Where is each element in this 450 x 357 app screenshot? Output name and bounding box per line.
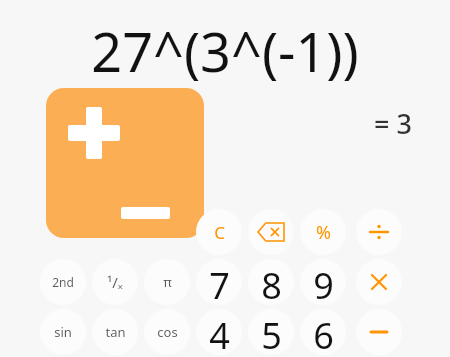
button[interactable]: 2nd [40, 259, 86, 305]
staticText: C [214, 221, 225, 244]
staticText: sin [54, 323, 72, 341]
staticText: 5 [261, 311, 282, 355]
staticText: tan [105, 323, 126, 341]
button[interactable]: π [144, 259, 190, 305]
button[interactable]: Plus and minus [46, 88, 204, 238]
staticText: 9 [313, 261, 334, 305]
staticText: cos [157, 323, 178, 341]
staticText: π [163, 273, 172, 291]
button[interactable]: 5 [248, 309, 294, 355]
button[interactable]: 4 [196, 309, 242, 355]
button[interactable]: 9 [300, 259, 346, 305]
button[interactable]: 8 [248, 259, 294, 305]
button[interactable]: sin [40, 309, 86, 355]
staticText: = 3 [0, 105, 412, 145]
button[interactable]: 7 [196, 259, 242, 305]
button[interactable]: cos [144, 309, 190, 355]
button[interactable]: 6 [300, 309, 346, 355]
button[interactable]: tan [92, 309, 138, 355]
staticText: 8 [261, 261, 282, 305]
staticText: 27^(3^(-1)) [0, 14, 450, 84]
staticText: 7 [209, 261, 230, 305]
staticText: 2nd [52, 274, 74, 290]
button[interactable]: Subtract [356, 309, 402, 355]
button[interactable]: % [300, 209, 346, 255]
staticText: 4 [209, 311, 230, 355]
staticText: % [316, 220, 331, 245]
staticText: ¹/ₓ [107, 272, 123, 292]
staticText: 6 [313, 311, 334, 355]
button[interactable]: Divide [356, 209, 402, 255]
button[interactable]: ¹/ₓ [92, 259, 138, 305]
button[interactable]: Backspace [248, 209, 294, 255]
button[interactable]: C [196, 209, 242, 255]
button[interactable]: Multiply [356, 259, 402, 305]
